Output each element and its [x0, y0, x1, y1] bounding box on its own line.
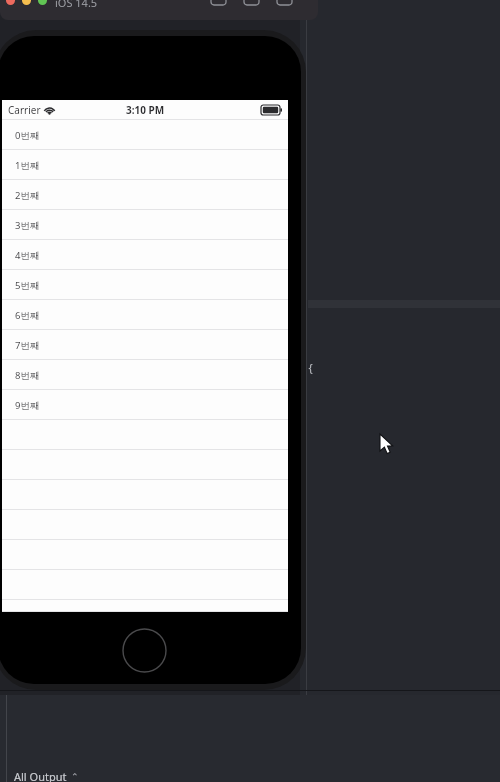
- button[interactable]: Record: [243, 0, 260, 6]
- button[interactable]: [2, 600, 288, 612]
- staticText: ⌃: [71, 772, 79, 782]
- button[interactable]: Options: [276, 0, 293, 6]
- staticText: iOS 14.5: [55, 0, 98, 10]
- button[interactable]: 2번째: [2, 180, 288, 210]
- button[interactable]: [2, 540, 288, 570]
- button[interactable]: [2, 450, 288, 480]
- button[interactable]: 5번째: [2, 270, 288, 300]
- button[interactable]: [2, 570, 288, 600]
- staticText: 7번째: [15, 339, 40, 352]
- button[interactable]: 4번째: [2, 240, 288, 270]
- staticText: 0번째: [15, 129, 40, 142]
- staticText: 2번째: [15, 189, 40, 202]
- button[interactable]: 3번째: [2, 210, 288, 240]
- button[interactable]: 1번째: [2, 150, 288, 180]
- button[interactable]: Zoom: [38, 0, 47, 5]
- button[interactable]: 0번째: [2, 120, 288, 150]
- button[interactable]: 7번째: [2, 330, 288, 360]
- button[interactable]: All Output: [14, 769, 79, 782]
- button[interactable]: [2, 510, 288, 540]
- button[interactable]: Home: [122, 628, 167, 673]
- staticText: 4번째: [15, 249, 40, 262]
- staticText: Carrier: [8, 103, 41, 117]
- staticText: All Output: [14, 769, 67, 782]
- button[interactable]: Minimize: [22, 0, 31, 5]
- staticText: 6번째: [15, 309, 40, 322]
- staticText: l {: [300, 360, 313, 375]
- staticText: 3번째: [15, 219, 40, 232]
- button[interactable]: 8번째: [2, 360, 288, 390]
- button[interactable]: 9번째: [2, 390, 288, 420]
- button[interactable]: [2, 480, 288, 510]
- staticText: 1번째: [15, 159, 40, 172]
- staticText: 5번째: [15, 279, 40, 292]
- staticText: 3:10 PM: [126, 103, 165, 117]
- button[interactable]: 6번째: [2, 300, 288, 330]
- button[interactable]: [2, 420, 288, 450]
- staticText: 9번째: [15, 399, 40, 412]
- button[interactable]: Screenshot: [210, 0, 227, 6]
- staticText: 8번째: [15, 369, 40, 382]
- button[interactable]: Close: [6, 0, 15, 5]
